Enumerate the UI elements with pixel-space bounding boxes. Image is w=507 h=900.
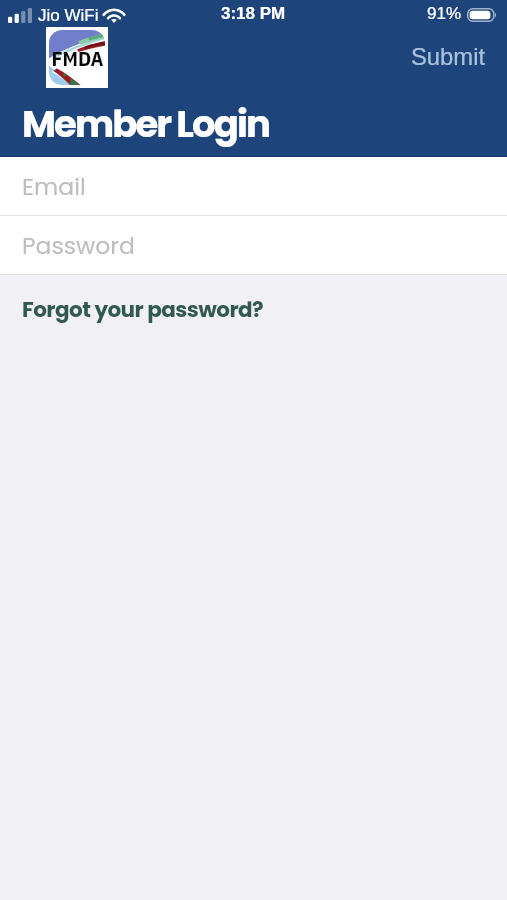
staticText: FMDA bbox=[51, 44, 104, 71]
staticText: Password bbox=[22, 229, 135, 262]
staticText: Email bbox=[22, 170, 86, 203]
button[interactable]: FMDA logo bbox=[46, 27, 108, 88]
button[interactable]: Forgot your password? bbox=[0, 275, 507, 343]
staticText: 91% bbox=[427, 4, 462, 23]
button[interactable]: Email bbox=[0, 157, 507, 215]
button[interactable]: Password bbox=[0, 216, 507, 274]
staticText: 3:18 PM bbox=[221, 4, 286, 23]
button[interactable]: Submit bbox=[411, 0, 507, 70]
staticText: Jio WiFi bbox=[38, 6, 99, 25]
staticText: Forgot your password? bbox=[22, 294, 264, 324]
staticText: Member Login bbox=[22, 98, 269, 150]
